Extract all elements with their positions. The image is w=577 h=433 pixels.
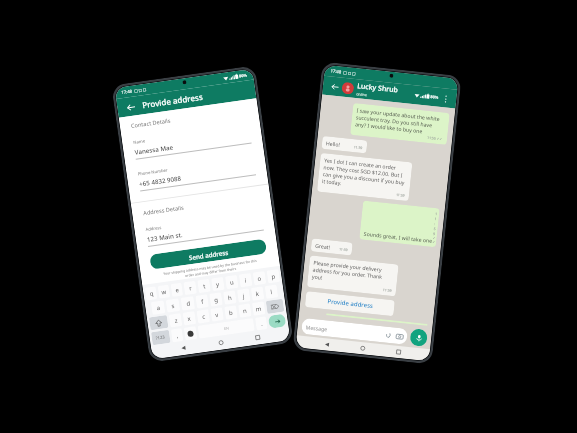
button[interactable]: e [170, 283, 183, 297]
button[interactable]: , [171, 328, 183, 342]
button[interactable]: Recents [393, 346, 404, 357]
staticText: Great! [315, 242, 330, 250]
button[interactable]: f [195, 294, 209, 309]
button[interactable]: Yes I do! I can create an order now. The… [317, 153, 412, 201]
button[interactable]: Space [197, 318, 255, 339]
staticText: p [271, 272, 276, 281]
button[interactable]: Provide address [305, 291, 395, 316]
button[interactable]: Home [215, 337, 227, 348]
button[interactable]: . [255, 316, 268, 331]
staticText: □ □ □ [343, 70, 357, 76]
button[interactable]: Sounds great, I will take one [359, 200, 440, 247]
staticText: Yes I do! I can create an order now. The… [322, 156, 408, 193]
button[interactable]: Shift [149, 315, 168, 330]
staticText: x [187, 315, 192, 323]
staticText: 123 Main st. [146, 230, 183, 243]
button[interactable]: h [223, 290, 237, 305]
button[interactable]: Back [321, 339, 332, 350]
staticText: □ □ □ [134, 86, 147, 93]
button[interactable]: More options [440, 93, 451, 104]
staticText: Lucky Shrub [357, 81, 398, 95]
button[interactable]: Hello! [321, 136, 367, 153]
staticText: ⌦ [270, 302, 280, 310]
button[interactable]: c [196, 309, 210, 324]
staticText: h [227, 294, 232, 302]
staticText: Please provide your delivery address for… [312, 259, 394, 288]
staticText: f [201, 298, 205, 306]
button[interactable]: n [238, 303, 252, 318]
staticText: EN [224, 325, 229, 331]
staticText: Message [305, 323, 328, 332]
button[interactable]: Message [301, 318, 408, 345]
button[interactable]: i [239, 273, 252, 287]
staticText: Your shipping address may be used by the… [155, 257, 266, 282]
button[interactable]: x [182, 311, 196, 326]
staticText: i [244, 276, 247, 285]
staticText: . [260, 320, 263, 328]
staticText: 11:59 [353, 144, 363, 150]
button[interactable]: g [209, 292, 223, 307]
button[interactable]: Camera [395, 332, 404, 340]
staticText: a [156, 304, 161, 312]
staticText: d [186, 300, 191, 308]
button[interactable]: t [197, 279, 211, 293]
button[interactable]: j [237, 288, 251, 303]
button[interactable] [341, 82, 354, 95]
button[interactable]: y [211, 277, 225, 291]
button[interactable]: Back [178, 342, 189, 354]
staticText: o [257, 274, 262, 283]
staticText: 80% [239, 72, 247, 79]
button[interactable]: Home [357, 343, 368, 354]
button[interactable]: Send address [149, 238, 267, 270]
button[interactable]: z [169, 313, 182, 327]
button[interactable]: p [266, 269, 280, 283]
staticText: 11:59 [383, 287, 392, 293]
staticText: Provide address [141, 91, 203, 110]
button[interactable]: l [265, 284, 278, 299]
staticText: 11:55 ✓✓ [427, 135, 443, 141]
button[interactable]: d [180, 296, 195, 311]
button[interactable]: s [166, 298, 180, 313]
button[interactable]: q [145, 286, 157, 301]
button[interactable]: b [224, 305, 238, 320]
button[interactable]: u [225, 275, 239, 289]
button[interactable]: Backspace [266, 299, 284, 314]
button[interactable]: v [210, 307, 224, 322]
button[interactable]: Back [328, 80, 341, 92]
button[interactable]: Emoji [184, 326, 197, 341]
button[interactable]: o [253, 271, 266, 285]
button[interactable]: Enter [268, 313, 286, 329]
staticText: online [356, 91, 368, 97]
staticText: g [214, 296, 219, 304]
staticText: u [229, 278, 234, 287]
button[interactable]: k [251, 286, 264, 301]
staticText: Hello! [326, 139, 340, 148]
staticText: Name [133, 138, 146, 146]
button[interactable]: Record voice message [409, 328, 428, 347]
button[interactable]: Back [124, 100, 137, 114]
staticText: w [161, 288, 167, 296]
staticText: Sounds great, I will take one [363, 230, 433, 244]
button[interactable]: Attach [384, 330, 393, 339]
button[interactable]: I saw your update about the white succul… [350, 103, 450, 145]
button[interactable]: r [183, 281, 197, 295]
button[interactable]: w [158, 284, 170, 299]
staticText: , [176, 331, 179, 340]
button[interactable]: Great! [311, 238, 353, 255]
staticText: b [228, 309, 234, 317]
button[interactable]: a [151, 300, 165, 315]
button[interactable]: Recents [252, 332, 263, 343]
button[interactable]: m [252, 301, 266, 316]
staticText: z [174, 316, 178, 325]
staticText: +65 4832 9088 [139, 174, 182, 187]
button[interactable]: ?123 [151, 330, 171, 345]
staticText: l [270, 288, 273, 296]
staticText: y [215, 280, 220, 289]
staticText: s [171, 302, 175, 310]
button[interactable]: Lucky Shrub [326, 313, 428, 326]
staticText: Send address [188, 248, 229, 261]
staticText: I saw your update about the white succul… [355, 106, 445, 136]
button[interactable]: Please provide your delivery address for… [307, 255, 399, 296]
staticText: 17:48 [121, 89, 133, 96]
staticText: k [255, 290, 260, 298]
